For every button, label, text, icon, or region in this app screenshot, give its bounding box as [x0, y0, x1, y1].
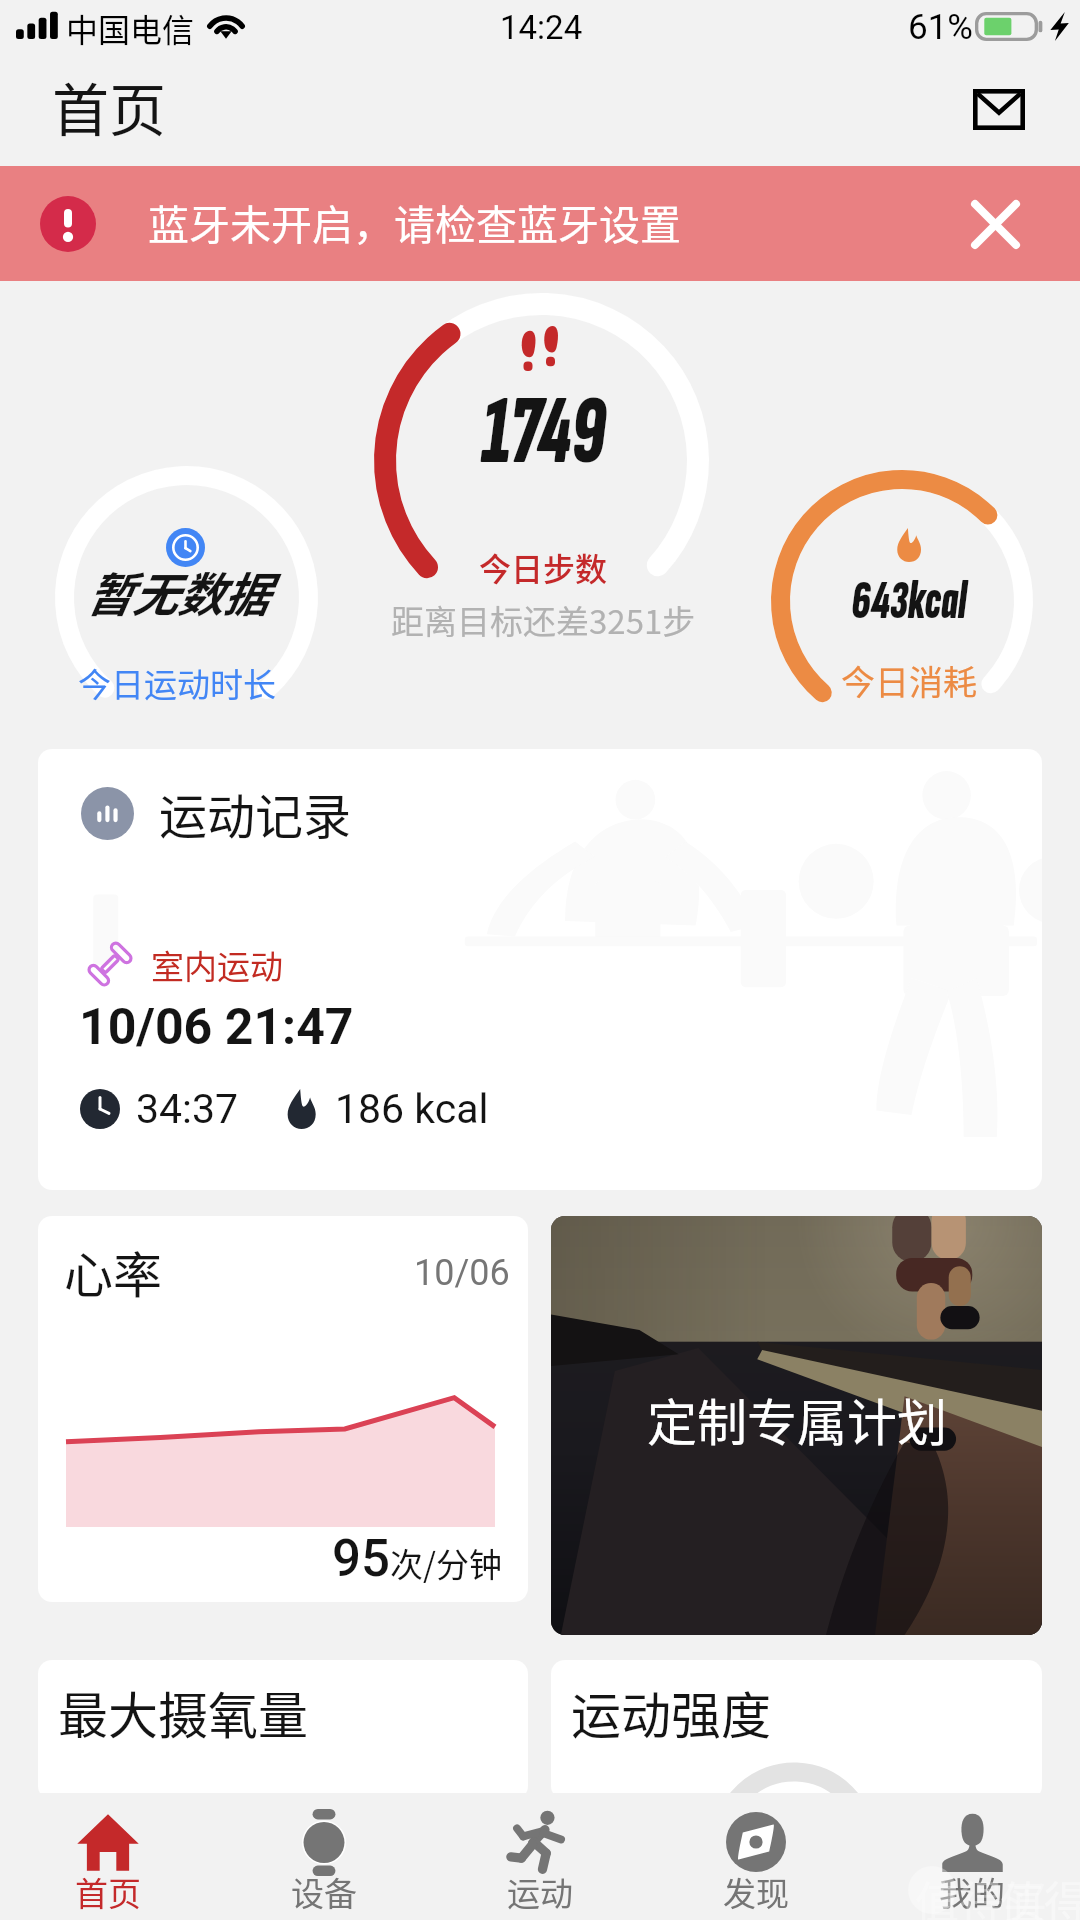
staticText: 运动强度: [571, 1676, 771, 1748]
button[interactable]: 今日步数: [374, 293, 709, 628]
staticText: 次/分钟: [390, 1539, 502, 1587]
staticText: 暂无数据: [86, 557, 268, 625]
button[interactable]: 设备: [216, 1793, 432, 1920]
staticText: 室内运动: [151, 941, 283, 989]
staticText: 值得买: [1000, 1868, 1080, 1920]
staticText: 最大摄氧量: [58, 1676, 308, 1748]
staticText: 61%: [908, 7, 973, 48]
button[interactable]: 我的: [864, 1793, 1080, 1920]
button[interactable]: 最大摄氧量: [38, 1660, 528, 1800]
staticText: 今日步数: [479, 544, 608, 590]
button[interactable]: 心率: [38, 1216, 528, 1602]
staticText: 95: [332, 1529, 390, 1589]
button[interactable]: 蓝牙未开启，请检查蓝牙设置: [0, 166, 1080, 281]
staticText: 34:37: [136, 1085, 239, 1133]
button[interactable]: 发现: [648, 1793, 864, 1920]
staticText: 10/06 21:47: [79, 998, 354, 1057]
staticText: 643kcal: [851, 568, 967, 634]
staticText: 发现: [723, 1868, 789, 1916]
staticText: 首页: [52, 65, 166, 148]
button[interactable]: 今日运动时长: [54, 466, 317, 729]
staticText: 运动记录: [159, 778, 352, 848]
staticText: 186 kcal: [335, 1085, 489, 1133]
button[interactable]: Close: [962, 191, 1028, 257]
staticText: 1749: [481, 375, 605, 491]
button[interactable]: 运动强度: [551, 1660, 1042, 1800]
button[interactable]: 运动记录: [38, 749, 1042, 1190]
staticText: 距离目标还差3251步: [391, 596, 696, 644]
staticText: 今日运动时长: [78, 659, 276, 707]
button[interactable]: 定制专属计划: [551, 1216, 1042, 1635]
staticText: 我的: [939, 1868, 1005, 1916]
staticText: 定制专属计划: [647, 1383, 947, 1455]
button[interactable]: 今日消耗: [771, 470, 1033, 732]
staticText: 心率: [64, 1236, 163, 1307]
staticText: 中国电信: [66, 5, 195, 51]
staticText: 今日消耗: [841, 656, 977, 705]
staticText: 首页: [75, 1868, 141, 1916]
staticText: 值得买: [915, 1868, 1047, 1920]
button[interactable]: Messages: [966, 76, 1032, 142]
button[interactable]: 运动: [432, 1793, 648, 1920]
staticText: 蓝牙未开启，请检查蓝牙设置: [148, 192, 681, 251]
staticText: 10/06: [414, 1252, 510, 1294]
staticText: 14:24: [500, 8, 583, 47]
staticText: 运动: [507, 1868, 573, 1916]
staticText: 设备: [291, 1868, 357, 1916]
button[interactable]: 首页: [0, 1793, 216, 1920]
